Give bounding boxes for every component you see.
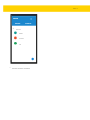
staticText: Inbox (16, 28, 21, 30)
button[interactable]: Select all (12, 27, 22, 30)
button[interactable]: Sam Lee (12, 30, 36, 35)
button[interactable]: Primary tab (15, 23, 21, 25)
staticText: PRIMARY (15, 23, 21, 25)
staticText: Fig. 3 (73, 7, 78, 9)
button[interactable]: Hi there (12, 41, 36, 46)
button[interactable]: Search (30, 17, 32, 20)
button[interactable]: Anna Moore (12, 35, 36, 40)
button[interactable]: Social tab (25, 22, 32, 24)
staticText: Gmail inbox screen (12, 67, 30, 70)
button[interactable]: Compose new message (32, 58, 34, 60)
staticText: Sam (19, 32, 23, 35)
staticText: Hi (19, 43, 21, 46)
staticText: Anna (19, 37, 24, 40)
staticText: SOCIAL (25, 22, 32, 24)
staticText: Gmail (13, 17, 19, 19)
